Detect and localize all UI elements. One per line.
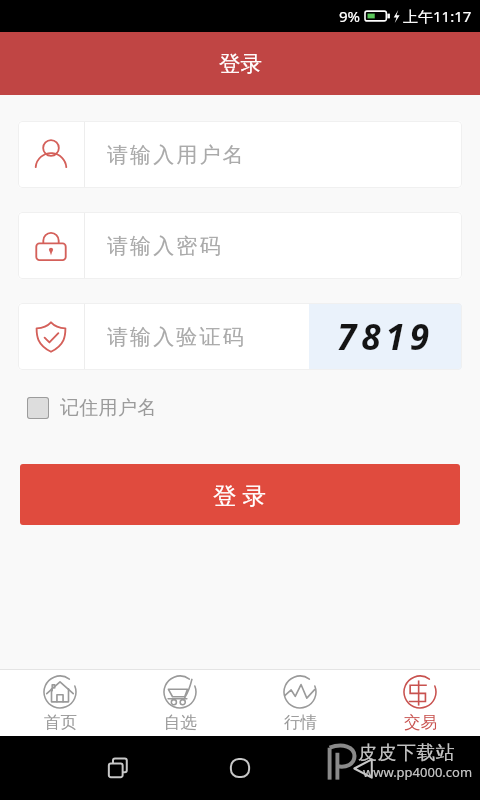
button[interactable]: 行情	[240, 670, 360, 736]
staticText: www.pp4000.com	[363, 763, 473, 781]
staticText: 记住用户名	[60, 396, 157, 420]
staticText: 登录	[219, 50, 262, 77]
button[interactable]: 自选	[120, 670, 240, 736]
button[interactable]: Back	[341, 746, 385, 790]
button[interactable]: 请输入用户名	[18, 121, 462, 188]
staticText: 请输入密码	[107, 233, 223, 259]
staticText: 登 录	[213, 479, 267, 511]
staticText: 行情	[284, 712, 317, 733]
staticText: 9%	[339, 6, 361, 26]
staticText: 7819	[337, 313, 435, 361]
button[interactable]: 请输入验证码	[18, 303, 462, 370]
staticText: 请输入验证码	[107, 324, 246, 350]
staticText: 皮皮下载站	[358, 741, 456, 765]
staticText: 请输入用户名	[107, 142, 246, 168]
button[interactable]: Home	[218, 746, 262, 790]
button[interactable]: 记住用户名	[27, 396, 157, 420]
button[interactable]: 请输入密码	[18, 212, 462, 279]
staticText: 交易	[404, 712, 437, 733]
button[interactable]: 交易	[360, 670, 480, 736]
button[interactable]: 首页	[0, 670, 120, 736]
button[interactable]: 登 录	[20, 464, 460, 525]
button[interactable]: Refresh captcha	[309, 303, 462, 370]
staticText: 首页	[44, 712, 77, 733]
staticText: 自选	[164, 712, 197, 733]
staticText: 上午11:17	[403, 6, 472, 26]
button[interactable]: Recent apps	[96, 746, 140, 790]
